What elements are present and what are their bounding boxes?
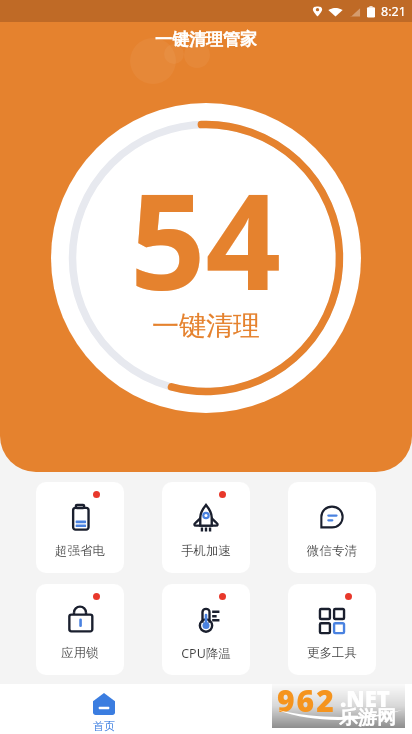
staticText: 微信专清 — [307, 543, 357, 559]
button[interactable]: CPU降温 — [162, 584, 250, 675]
button[interactable]: 手机加速 — [162, 482, 250, 573]
staticText: 更多工具 — [307, 645, 357, 661]
staticText: .NET — [340, 683, 390, 713]
staticText: 一键清理 — [152, 309, 260, 343]
staticText: 首页 — [93, 719, 115, 733]
button[interactable]: 应用锁 — [36, 584, 124, 675]
button[interactable]: 54 — [51, 103, 361, 413]
staticText: 54 — [130, 149, 282, 329]
button[interactable]: 更多工具 — [288, 584, 376, 675]
staticText: 一键清理管家 — [155, 29, 257, 50]
staticText: 应用锁 — [61, 645, 99, 661]
button[interactable]: 首页 — [0, 684, 207, 734]
staticText: 8:21 — [381, 3, 406, 20]
staticText: 乐游网 — [339, 706, 396, 730]
staticText: 手机加速 — [181, 543, 231, 559]
button[interactable]: 微信专清 — [288, 482, 376, 573]
staticText: 超强省电 — [55, 543, 105, 559]
staticText: CPU降温 — [181, 645, 231, 662]
button[interactable]: 超强省电 — [36, 482, 124, 573]
staticText: 962 — [277, 680, 336, 721]
